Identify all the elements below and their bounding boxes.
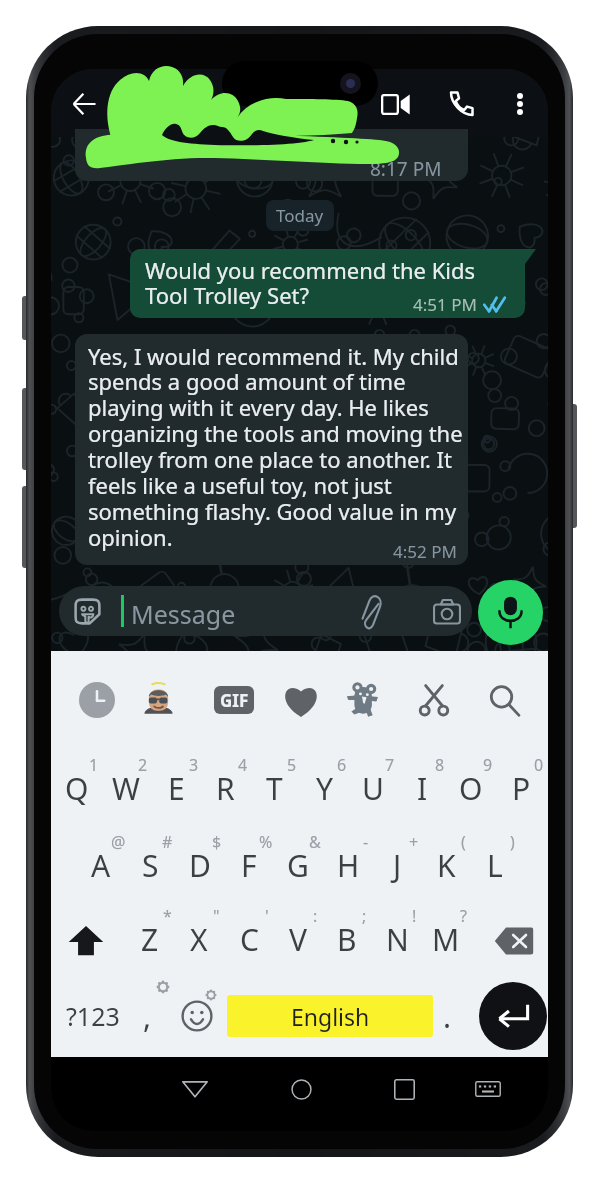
staticText: + xyxy=(409,831,419,853)
staticText: W xyxy=(112,768,140,809)
button[interactable]: Search xyxy=(479,675,529,725)
button[interactable]: C xyxy=(225,904,273,974)
button[interactable]: Q xyxy=(53,753,101,823)
button[interactable]: GIF xyxy=(209,675,259,725)
staticText: U xyxy=(362,768,384,809)
button[interactable]: Record voice message xyxy=(478,580,543,645)
staticText: J xyxy=(393,845,402,886)
staticText: Y xyxy=(316,768,333,809)
staticText: L xyxy=(487,845,503,886)
staticText: : xyxy=(313,905,318,927)
staticText: 4 xyxy=(238,754,248,776)
button[interactable]: Enter xyxy=(479,982,547,1050)
button[interactable]: I xyxy=(398,753,446,823)
staticText: 3 xyxy=(189,754,199,776)
button[interactable]: . xyxy=(424,981,470,1051)
button[interactable]: Video call xyxy=(373,82,417,126)
staticText: N xyxy=(386,919,409,960)
staticText: 8 xyxy=(435,754,445,776)
staticText: Today xyxy=(276,204,324,227)
staticText: " xyxy=(213,905,220,927)
button[interactable]: A xyxy=(77,830,125,900)
staticText: O xyxy=(459,768,483,809)
staticText: 2 xyxy=(138,754,148,776)
button[interactable]: Backspace xyxy=(484,906,544,976)
button[interactable]: R xyxy=(201,753,249,823)
staticText: R xyxy=(216,768,235,809)
staticText: T xyxy=(266,768,283,809)
button[interactable]: J xyxy=(373,830,421,900)
staticText: P xyxy=(512,768,531,809)
staticText: ?123 xyxy=(66,999,120,1033)
button[interactable]: O xyxy=(447,753,495,823)
staticText: V xyxy=(289,919,307,960)
staticText: S xyxy=(142,845,159,886)
button[interactable]: Shift xyxy=(56,906,116,976)
staticText: ' xyxy=(265,905,269,927)
staticText: G xyxy=(287,845,309,886)
button[interactable]: Keyboard xyxy=(466,1067,510,1111)
staticText: 4:51 PM xyxy=(413,293,477,316)
staticText: C xyxy=(240,919,259,960)
button[interactable]: Stickers xyxy=(276,675,326,725)
staticText: ! xyxy=(412,905,417,927)
staticText: B xyxy=(337,919,357,960)
button[interactable]: Y xyxy=(300,753,348,823)
staticText: Q xyxy=(65,768,89,809)
button[interactable]: W xyxy=(102,753,150,823)
staticText: H xyxy=(337,845,360,886)
button[interactable]: Would you recommend the Kids Tool Trolle… xyxy=(130,249,525,318)
button[interactable]: B xyxy=(323,904,371,974)
staticText: ) xyxy=(510,831,515,853)
staticText: E xyxy=(168,768,185,809)
staticText: K xyxy=(437,845,456,886)
button[interactable]: U xyxy=(349,753,397,823)
button[interactable]: D xyxy=(176,830,224,900)
button[interactable]: L xyxy=(471,830,519,900)
staticText: Message xyxy=(131,597,236,631)
button[interactable]: Emoji sticker xyxy=(337,675,387,725)
button[interactable]: E xyxy=(152,753,200,823)
button[interactable]: Clipboard xyxy=(409,675,459,725)
button[interactable]: X xyxy=(175,904,223,974)
button[interactable]: , xyxy=(127,981,173,1051)
staticText: GIF xyxy=(220,689,249,712)
button[interactable]: English xyxy=(227,995,433,1037)
staticText: 7 xyxy=(385,754,395,776)
staticText: M xyxy=(432,919,460,960)
staticText: # xyxy=(162,831,173,853)
button[interactable]: Back xyxy=(173,1067,217,1111)
button[interactable]: N xyxy=(373,904,421,974)
staticText: $ xyxy=(212,831,222,853)
button[interactable]: More options xyxy=(498,82,542,126)
button[interactable]: ?123 xyxy=(54,981,132,1051)
staticText: 0 xyxy=(534,754,544,776)
button[interactable]: K xyxy=(422,830,470,900)
staticText: Would you recommend the Kids Tool Trolle… xyxy=(145,255,476,311)
button[interactable]: Voice call xyxy=(439,82,483,126)
button[interactable]: Home xyxy=(279,1067,323,1111)
button[interactable]: M xyxy=(422,904,470,974)
button[interactable]: Recent emoji xyxy=(72,675,122,725)
staticText: @ xyxy=(111,831,126,853)
staticText: & xyxy=(309,831,321,853)
staticText: 6 xyxy=(337,754,347,776)
button[interactable]: G xyxy=(274,830,322,900)
staticText: Z xyxy=(141,919,159,960)
button[interactable]: Emoji xyxy=(174,981,220,1051)
button[interactable]: P xyxy=(497,753,545,823)
button[interactable]: S xyxy=(126,830,174,900)
staticText: * xyxy=(163,905,172,927)
button[interactable]: F xyxy=(225,830,273,900)
staticText: 1 xyxy=(89,754,99,776)
button[interactable]: V xyxy=(274,904,322,974)
button[interactable]: Recents xyxy=(382,1067,426,1111)
button[interactable]: Avatar stickers xyxy=(133,675,183,725)
staticText: ( xyxy=(461,831,466,853)
button[interactable]: Yes, I would recommend it. My child spen… xyxy=(75,334,468,565)
button[interactable]: T xyxy=(250,753,298,823)
button[interactable]: Message xyxy=(59,586,472,636)
button[interactable]: Back xyxy=(62,82,106,126)
button[interactable]: Z xyxy=(126,904,174,974)
button[interactable]: H xyxy=(324,830,372,900)
